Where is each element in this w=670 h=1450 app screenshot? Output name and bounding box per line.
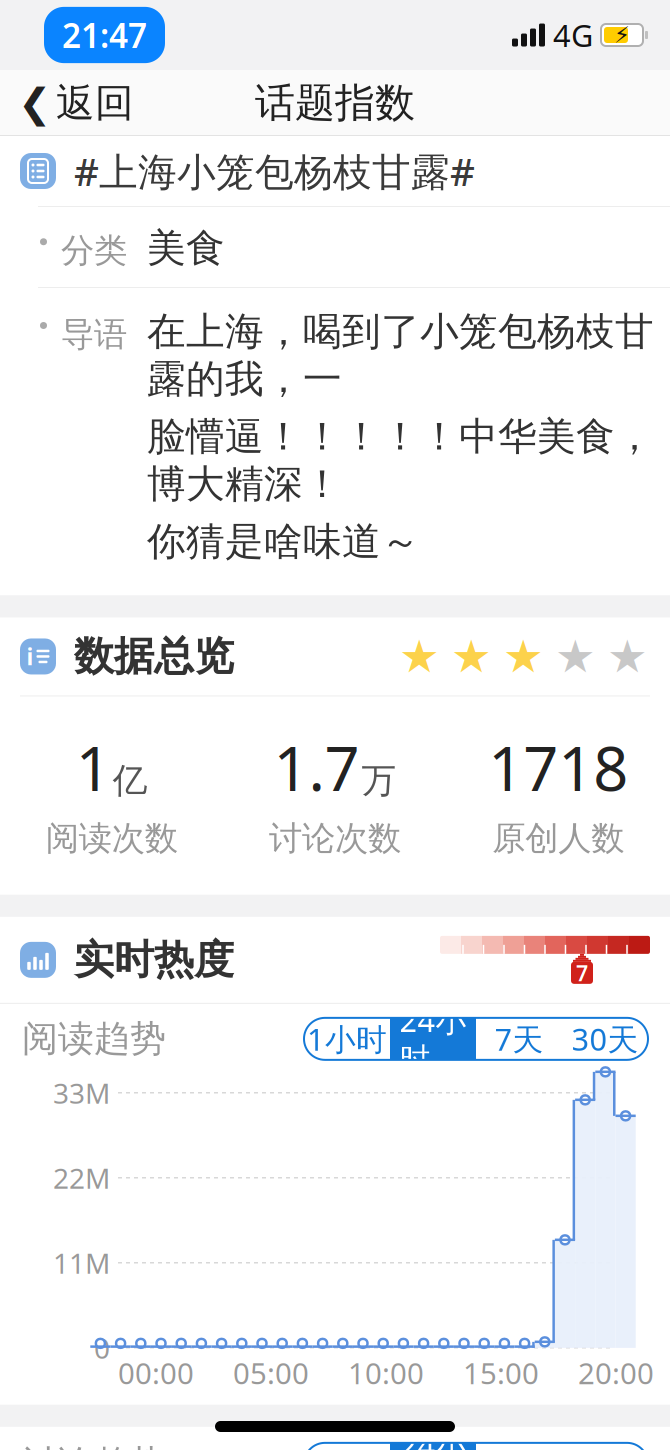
- staticText: 美食: [147, 224, 225, 272]
- staticText: 21:47: [62, 13, 147, 57]
- staticText: 4G: [553, 15, 593, 55]
- staticText: 05:00: [233, 1353, 309, 1392]
- staticText: 亿: [113, 759, 148, 802]
- staticText: 万: [361, 759, 396, 802]
- staticText: 15:00: [463, 1353, 539, 1392]
- staticText: ★: [607, 631, 648, 682]
- staticText: 22M: [53, 1159, 110, 1196]
- staticText: 10:00: [348, 1353, 424, 1392]
- staticText: 数据总览: [74, 632, 234, 681]
- staticText: 你猜是啥味道～: [147, 518, 420, 565]
- staticText: 话题指数: [255, 78, 415, 127]
- staticText: 11M: [53, 1244, 110, 1281]
- staticText: 33M: [53, 1074, 110, 1111]
- staticText: i: [26, 641, 33, 671]
- staticText: ⚡︎: [614, 22, 630, 48]
- staticText: 实时热度: [74, 935, 234, 984]
- staticText: 阅读次数: [46, 818, 178, 859]
- staticText: 1小时: [307, 1443, 387, 1450]
- staticText: 1小时: [307, 1018, 387, 1059]
- button[interactable]: 30天: [562, 1443, 648, 1450]
- button[interactable]: 24小时: [390, 1018, 476, 1060]
- button[interactable]: 7天: [476, 1443, 562, 1450]
- staticText: ★: [399, 631, 440, 682]
- staticText: 1: [76, 726, 111, 808]
- staticText: 分类: [61, 230, 127, 271]
- staticText: 0: [94, 1329, 110, 1366]
- button[interactable]: #上海小笼包杨枝甘露#: [0, 136, 670, 206]
- staticText: 讨论趋势: [22, 1442, 166, 1450]
- staticText: 24小时: [399, 1000, 466, 1078]
- staticText: 30天: [571, 1018, 638, 1059]
- staticText: 20:00: [578, 1353, 654, 1392]
- staticText: 在上海，喝到了小笼包杨枝甘露的我，一: [147, 308, 654, 403]
- staticText: 30天: [571, 1443, 638, 1450]
- button[interactable]: 24小时: [390, 1443, 476, 1450]
- staticText: 00:00: [118, 1353, 194, 1392]
- staticText: 7天: [494, 1018, 543, 1059]
- staticText: 24小时: [399, 1425, 466, 1450]
- button[interactable]: 30天: [562, 1018, 648, 1060]
- staticText: #上海小笼包杨枝甘露#: [74, 145, 475, 197]
- staticText: 1.7: [273, 726, 359, 808]
- staticText: 原创人数: [492, 818, 624, 859]
- staticText: 返回: [56, 79, 134, 127]
- staticText: 1718: [488, 726, 628, 808]
- staticText: 脸懵逼！！！！！中华美食，博大精深！: [147, 413, 654, 508]
- staticText: 阅读趋势: [22, 1017, 166, 1061]
- button[interactable]: ❮: [0, 70, 152, 136]
- staticText: 讨论次数: [269, 818, 401, 859]
- staticText: ★: [503, 631, 544, 682]
- button[interactable]: 7天: [476, 1018, 562, 1060]
- button[interactable]: 1小时: [304, 1018, 390, 1060]
- staticText: ★: [451, 631, 492, 682]
- staticText: ★: [555, 631, 596, 682]
- button[interactable]: 1小时: [304, 1443, 390, 1450]
- staticText: 7: [576, 959, 588, 987]
- staticText: 导语: [61, 314, 127, 355]
- staticText: ❮: [18, 80, 52, 126]
